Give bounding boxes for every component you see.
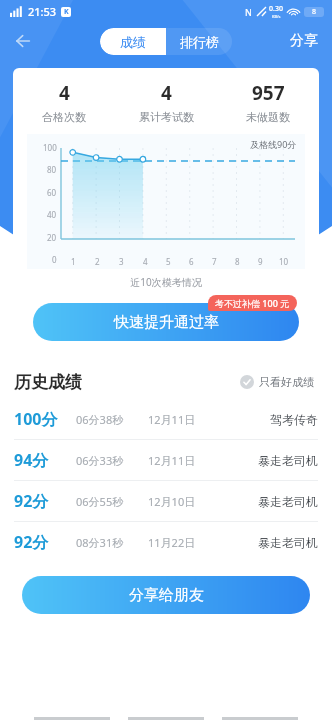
staticText: 及格线90分 — [250, 138, 297, 150]
staticText: 排行榜 — [180, 34, 219, 50]
staticText: 100分 — [14, 408, 58, 430]
button[interactable]: 92分 — [0, 522, 332, 562]
staticText: 1 — [71, 256, 76, 267]
staticText: 94分 — [14, 449, 49, 471]
staticText: 2 — [95, 256, 100, 267]
staticText: 历史成绩 — [14, 372, 82, 393]
button[interactable]: 成绩 — [100, 28, 166, 55]
button[interactable]: 排行榜 — [166, 28, 232, 55]
staticText: 近10次模考情况 — [13, 275, 319, 289]
staticText: 分享 — [290, 32, 318, 50]
staticText: KB/s — [272, 14, 281, 19]
button[interactable]: 100分 — [0, 399, 332, 439]
staticText: 06分55秒 — [76, 494, 124, 509]
staticText: 考不过补偿 100 元 — [215, 297, 290, 309]
staticText: 92分 — [14, 531, 49, 553]
staticText: 5 — [166, 256, 171, 267]
staticText: 暴走老司机 — [258, 453, 318, 468]
staticText: 12月11日 — [148, 453, 196, 468]
staticText: 4 — [59, 80, 70, 106]
staticText: 08分31秒 — [76, 535, 124, 550]
staticText: 6 — [189, 256, 194, 267]
button[interactable]: 分享给朋友 — [22, 576, 310, 614]
button[interactable]: 94分 — [0, 440, 332, 480]
staticText: 成绩 — [120, 34, 146, 50]
staticText: 7 — [212, 256, 217, 267]
staticText: 3 — [119, 256, 124, 267]
staticText: 8 — [235, 256, 240, 267]
staticText: 20 — [47, 232, 57, 243]
staticText: 4 — [143, 256, 148, 267]
staticText: 4 — [161, 80, 172, 106]
staticText: 暴走老司机 — [258, 494, 318, 509]
staticText: 合格次数 — [42, 110, 86, 124]
staticText: 0.30 — [269, 4, 283, 14]
staticText: 未做题数 — [246, 110, 290, 124]
staticText: 40 — [47, 209, 57, 220]
button[interactable]: 92分 — [0, 481, 332, 521]
staticText: 21:53 — [28, 4, 57, 19]
staticText: 06分33秒 — [76, 453, 124, 468]
staticText: 12月11日 — [148, 412, 196, 427]
staticText: K — [64, 7, 69, 17]
staticText: 100 — [43, 142, 57, 153]
staticText: 分享给朋友 — [129, 586, 204, 605]
staticText: 累计考试数 — [139, 110, 194, 124]
button[interactable]: Back — [6, 24, 40, 58]
staticText: 957 — [252, 80, 285, 106]
staticText: 0 — [52, 254, 57, 265]
staticText: 92分 — [14, 490, 49, 512]
staticText: 只看好成绩 — [259, 375, 314, 389]
staticText: 06分38秒 — [76, 412, 124, 427]
staticText: N — [245, 6, 252, 18]
button[interactable]: 只看好成绩 — [236, 371, 318, 393]
staticText: 快速提升通过率 — [114, 313, 219, 332]
staticText: 80 — [47, 164, 57, 175]
staticText: 12月10日 — [148, 494, 196, 509]
staticText: 11月22日 — [148, 535, 196, 550]
staticText: 10 — [279, 256, 289, 267]
staticText: 60 — [47, 187, 57, 198]
button[interactable]: 快速提升通过率 — [33, 303, 299, 341]
staticText: 暴走老司机 — [258, 535, 318, 550]
staticText: 8 — [312, 7, 317, 17]
staticText: 驾考传奇 — [270, 412, 318, 427]
button[interactable]: 分享 — [286, 26, 322, 56]
staticText: 9 — [258, 256, 263, 267]
